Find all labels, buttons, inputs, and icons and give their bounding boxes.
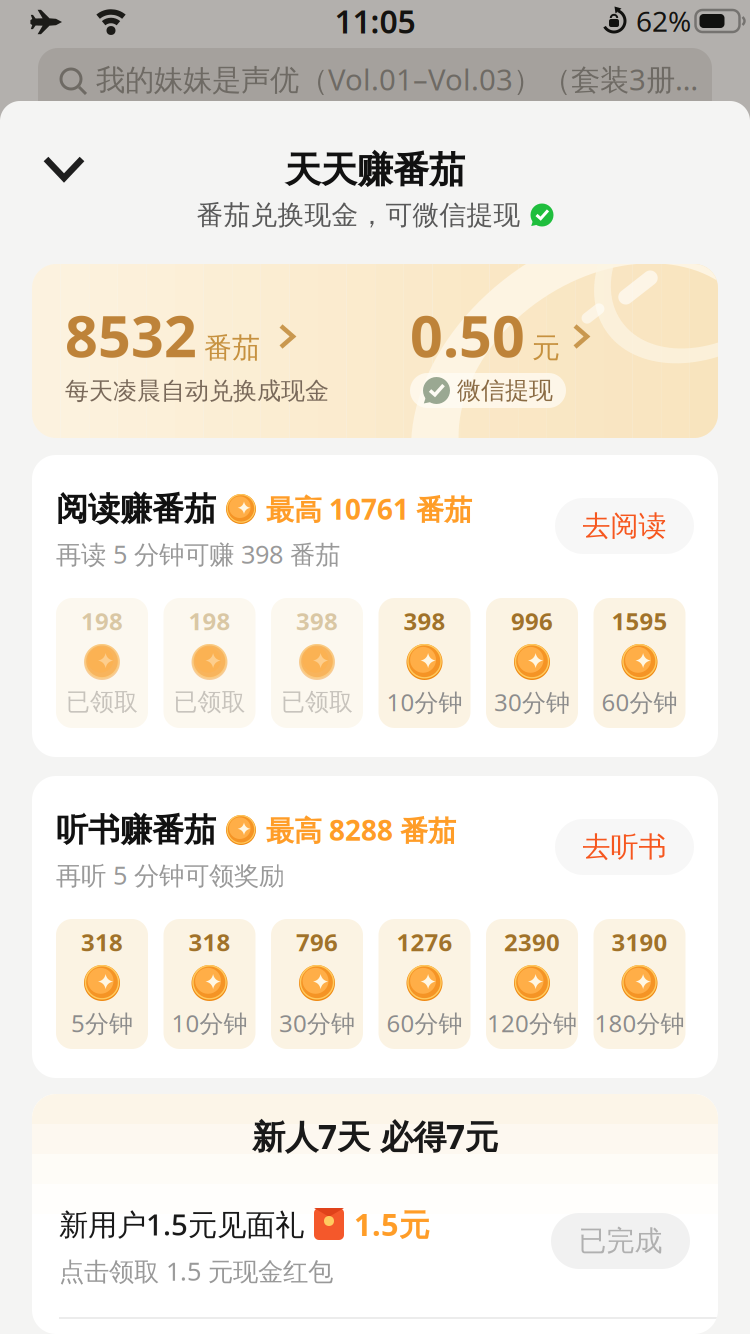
staticText: 新人7天 必得7元 xyxy=(252,1114,498,1158)
staticText: 996 xyxy=(511,605,553,637)
button[interactable]: 2390番茄 120分钟 xyxy=(486,919,578,1049)
button[interactable]: 398番茄 10分钟 xyxy=(378,598,470,728)
staticText: 最高 10761 番茄 xyxy=(266,490,472,528)
staticText: 去阅读 xyxy=(582,509,666,543)
staticText: 再读 5 分钟可赚 398 番茄 xyxy=(56,537,340,571)
staticText: 10分钟 xyxy=(386,686,462,718)
staticText: 120分钟 xyxy=(487,1007,577,1039)
staticText: 再听 5 分钟可领奖励 xyxy=(56,858,284,892)
staticText: 番茄 xyxy=(204,331,260,365)
staticText: 新用户1.5元见面礼 xyxy=(59,1204,304,1243)
staticText: 198 xyxy=(188,605,230,637)
staticText: 1.5元 xyxy=(354,1204,430,1244)
staticText: 已完成 xyxy=(578,1224,662,1258)
staticText: 60分钟 xyxy=(601,686,677,718)
button[interactable]: 796番茄 30分钟 xyxy=(271,919,363,1049)
staticText: 已领取 xyxy=(173,687,245,717)
staticText: 每天凌晨自动兑换成现金 xyxy=(65,376,329,406)
button[interactable]: 398番茄 已领取 xyxy=(271,598,363,728)
staticText: 3190 xyxy=(611,926,667,958)
staticText: 398 xyxy=(403,605,445,637)
button[interactable]: 3190番茄 180分钟 xyxy=(593,919,685,1049)
button[interactable]: 现金余额 0.50元，微信提现 xyxy=(410,264,650,438)
staticText: 阅读赚番茄 xyxy=(56,489,216,529)
staticText: 天天赚番茄 xyxy=(285,148,465,192)
button[interactable]: 318番茄 5分钟 xyxy=(56,919,148,1049)
staticText: 796 xyxy=(296,926,338,958)
staticText: 番茄兑换现金，可微信提现 xyxy=(196,199,520,231)
staticText: 0.50 xyxy=(410,297,525,373)
staticText: 30分钟 xyxy=(279,1007,355,1039)
staticText: 听书赚番茄 xyxy=(56,810,216,850)
button[interactable]: 198番茄 已领取 xyxy=(163,598,255,728)
staticText: 1276 xyxy=(396,926,452,958)
staticText: 10分钟 xyxy=(171,1007,247,1039)
staticText: 去听书 xyxy=(582,830,666,864)
staticText: 11:05 xyxy=(334,0,415,42)
staticText: 318 xyxy=(188,926,230,958)
staticText: 198 xyxy=(81,605,123,637)
button[interactable]: 番茄余额 8532 xyxy=(32,264,377,438)
button[interactable]: 318番茄 10分钟 xyxy=(163,919,255,1049)
staticText: 已领取 xyxy=(66,687,138,717)
staticText: 5分钟 xyxy=(71,1007,133,1039)
button[interactable]: 已完成 xyxy=(551,1213,690,1269)
staticText: 318 xyxy=(81,926,123,958)
button[interactable]: 1276番茄 60分钟 xyxy=(378,919,470,1049)
staticText: 62% xyxy=(636,2,691,40)
staticText: 60分钟 xyxy=(386,1007,462,1039)
button[interactable]: 收起 xyxy=(32,145,96,192)
staticText: 180分钟 xyxy=(594,1007,684,1039)
staticText: 元 xyxy=(532,331,560,365)
staticText: 1595 xyxy=(611,605,667,637)
button[interactable]: 去听书 xyxy=(555,819,694,875)
staticText: 点击领取 1.5 元现金红包 xyxy=(59,1254,333,1288)
staticText: 我的妹妹是声优（Vol.01–Vol.03）（套装3册… xyxy=(96,59,698,98)
staticText: 最高 8288 番茄 xyxy=(266,811,456,849)
staticText: 30分钟 xyxy=(494,686,570,718)
staticText: 8532 xyxy=(65,297,197,373)
staticText: 2390 xyxy=(504,926,560,958)
button[interactable]: 去阅读 xyxy=(555,498,694,554)
staticText: 已领取 xyxy=(281,687,353,717)
button[interactable]: 996番茄 30分钟 xyxy=(486,598,578,728)
button[interactable]: 1595番茄 60分钟 xyxy=(593,598,685,728)
button[interactable]: 198番茄 已领取 xyxy=(56,598,148,728)
staticText: 微信提现 xyxy=(457,376,553,405)
staticText: 398 xyxy=(296,605,338,637)
